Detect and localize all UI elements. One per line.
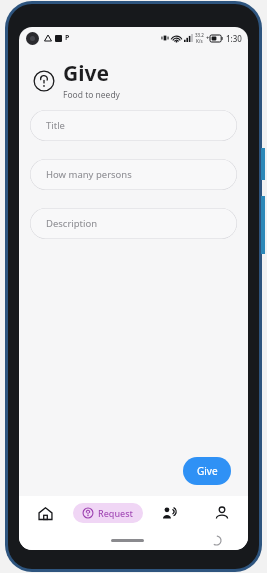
staticText: Description	[46, 217, 98, 230]
staticText: Title	[46, 119, 65, 132]
staticText: 33.2	[195, 32, 204, 38]
staticText: Give	[197, 464, 218, 478]
staticText: Food to needy	[63, 89, 120, 101]
staticText: P	[65, 33, 70, 43]
staticText: Request	[98, 507, 134, 519]
button[interactable]: Description	[30, 208, 237, 239]
button[interactable]: Title	[30, 110, 237, 141]
staticText: 1:30	[226, 33, 242, 44]
staticText: +	[206, 34, 210, 42]
staticText: How many persons	[46, 168, 132, 181]
button[interactable]: Request	[73, 503, 143, 523]
button[interactable]: Profile	[196, 496, 248, 530]
button[interactable]: How many persons	[30, 159, 237, 190]
staticText: Give	[63, 59, 110, 88]
button[interactable]: Back	[211, 535, 222, 546]
staticText: K/s	[196, 38, 203, 44]
button[interactable]: Help	[32, 69, 55, 92]
button[interactable]: Announce	[144, 496, 196, 530]
button[interactable]: Home	[19, 496, 71, 530]
button[interactable]: Give	[183, 457, 231, 485]
